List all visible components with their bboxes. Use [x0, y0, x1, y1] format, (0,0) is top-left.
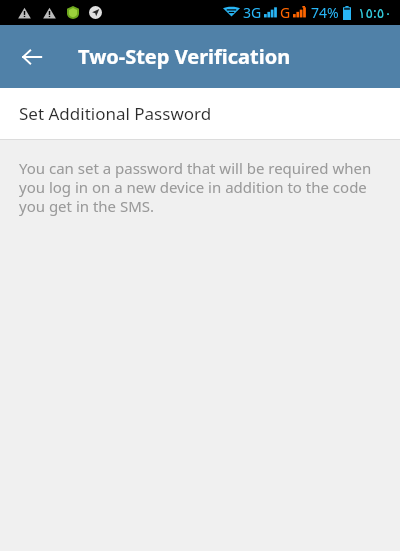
button[interactable]: Set Additional Password	[0, 88, 400, 140]
staticText: 3G	[243, 3, 262, 22]
staticText: Set Additional Password	[19, 102, 212, 125]
staticText: G	[280, 3, 291, 22]
staticText: Two-Step Verification	[78, 43, 291, 70]
staticText: 74%	[311, 3, 339, 22]
staticText: You can set a password that will be requ…	[19, 158, 378, 216]
button[interactable]: Back	[8, 33, 56, 81]
staticText: ١٥:٥٠	[358, 3, 392, 22]
